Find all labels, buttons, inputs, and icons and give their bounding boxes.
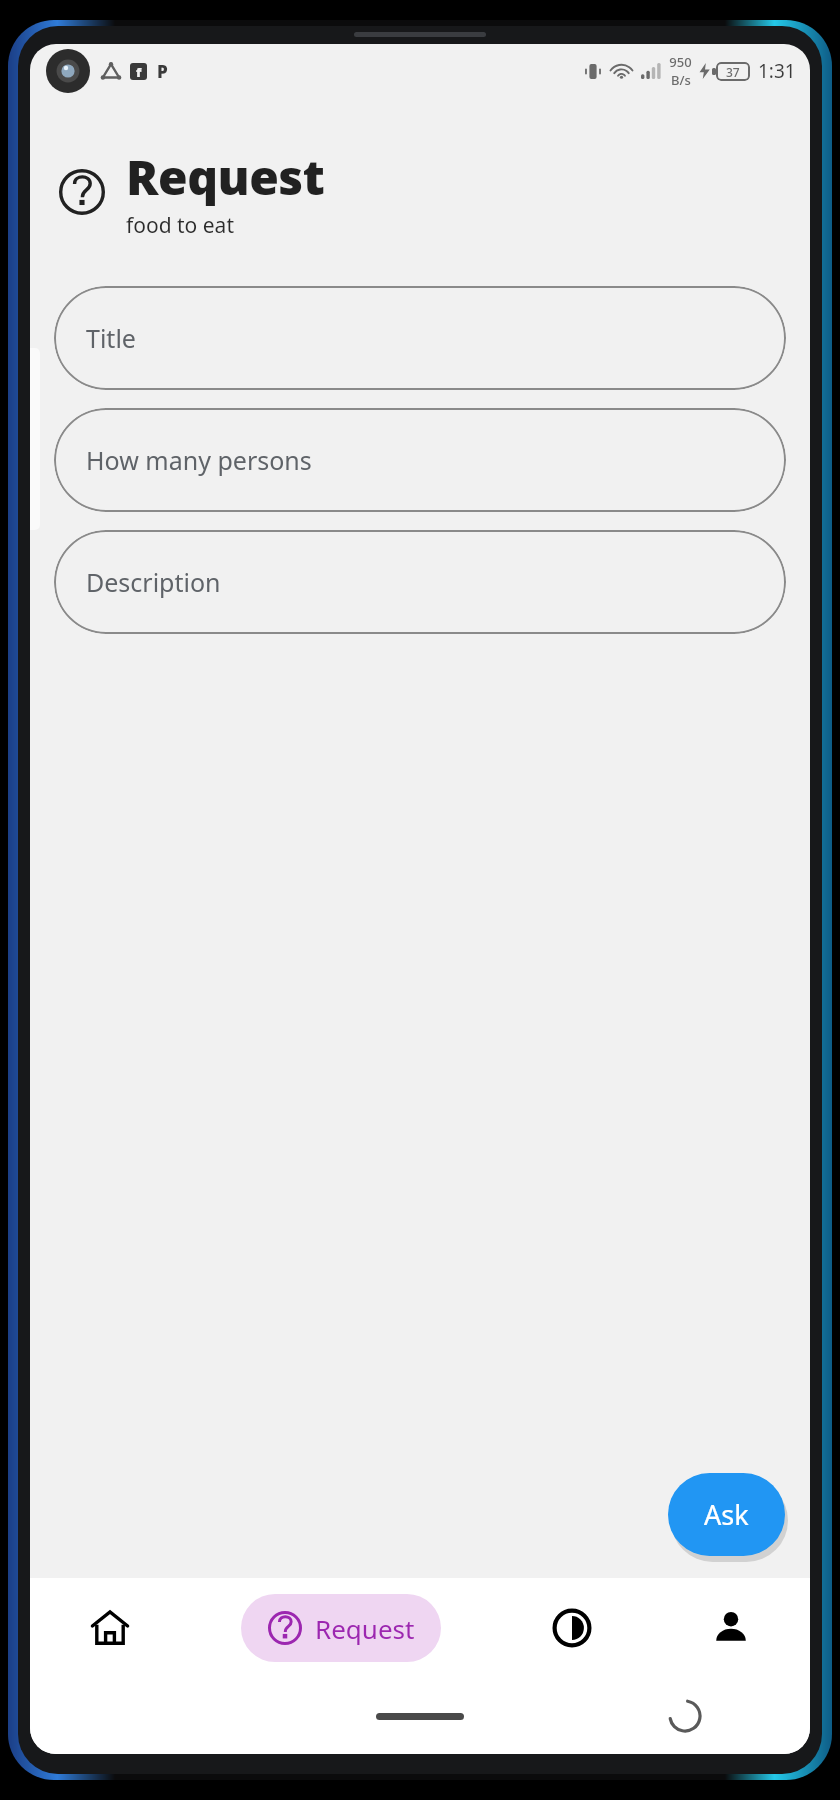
staticText: food to eat <box>126 211 234 240</box>
staticText: 950 <box>669 53 692 71</box>
staticText: 1:31 <box>758 58 796 84</box>
button[interactable]: How many persons <box>54 408 786 512</box>
other: Back <box>670 1701 700 1731</box>
staticText: Description <box>86 565 221 599</box>
staticText: B/s <box>671 71 691 89</box>
button[interactable]: Dark mode <box>492 1578 651 1678</box>
staticText: Title <box>86 321 136 355</box>
staticText: Request <box>315 1611 415 1646</box>
staticText: Ask <box>704 1496 749 1533</box>
staticText: Request <box>126 144 325 209</box>
button[interactable]: Help <box>56 166 108 218</box>
button[interactable]: Description <box>54 530 786 634</box>
button[interactable]: Profile <box>651 1578 810 1678</box>
button[interactable]: Ask <box>668 1473 785 1556</box>
button[interactable]: Title <box>54 286 786 390</box>
staticText: 37 <box>726 64 740 80</box>
button[interactable]: Home <box>30 1578 190 1678</box>
button[interactable]: Request <box>241 1594 441 1662</box>
staticText: How many persons <box>86 443 312 477</box>
staticText: f <box>136 63 142 80</box>
staticText: P <box>157 60 168 83</box>
